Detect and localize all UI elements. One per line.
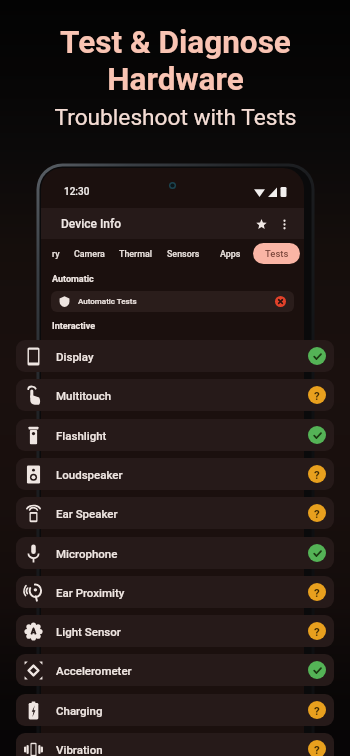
staticText: ?	[314, 507, 320, 520]
button[interactable]: Display	[16, 340, 334, 372]
button[interactable]: More options	[274, 214, 294, 234]
staticText: Ear Proximity	[56, 586, 125, 599]
button[interactable]: Ear Speaker	[16, 497, 334, 529]
staticText: Automatic Tests	[78, 297, 137, 306]
button[interactable]: ry	[45, 243, 67, 264]
staticText: Thermal	[119, 249, 153, 259]
staticText: Automatic	[52, 274, 94, 285]
staticText: ?	[314, 625, 320, 638]
button[interactable]: Ear Proximity	[16, 576, 334, 608]
button[interactable]: Apps	[207, 243, 248, 264]
staticText: Loudspeaker	[56, 468, 123, 481]
staticText: Camera	[74, 249, 105, 259]
staticText: Microphone	[56, 547, 118, 560]
staticText: Apps	[220, 249, 241, 259]
staticText: Multitouch	[56, 389, 112, 402]
button[interactable]: Loudspeaker	[16, 458, 334, 490]
button[interactable]: Accelerometer	[16, 654, 334, 686]
staticText: Light Sensor	[56, 625, 121, 638]
staticText: Sensors	[167, 249, 200, 259]
staticText: ?	[314, 389, 320, 402]
staticText: Hardware	[107, 61, 244, 98]
staticText: Ear Speaker	[56, 507, 118, 520]
staticText: ?	[314, 704, 320, 717]
staticText: ry	[52, 249, 60, 259]
staticText: ?	[314, 743, 320, 756]
button[interactable]: Flashlight	[16, 419, 334, 451]
staticText: Vibration	[56, 743, 103, 756]
button[interactable]: Charging	[16, 694, 334, 726]
button[interactable]: Vibration	[16, 733, 334, 756]
button[interactable]: Tests	[253, 243, 300, 264]
staticText: Device Info	[61, 217, 122, 231]
staticText: Accelerometer	[56, 664, 132, 677]
staticText: Charging	[56, 704, 103, 717]
staticText: Troubleshoot with Tests	[54, 104, 297, 131]
staticText: ?	[314, 468, 320, 481]
button[interactable]: Camera	[67, 243, 112, 264]
staticText: 12:30	[64, 186, 90, 198]
button[interactable]: Light Sensor	[16, 615, 334, 647]
button[interactable]: Favorite	[251, 214, 271, 234]
button[interactable]: Automatic Tests	[51, 291, 294, 312]
staticText: Interactive	[52, 321, 96, 332]
staticText: ?	[314, 586, 320, 599]
button[interactable]: Microphone	[16, 537, 334, 569]
button[interactable]: Sensors	[160, 243, 207, 264]
button[interactable]: Multitouch	[16, 379, 334, 411]
button[interactable]: Thermal	[112, 243, 160, 264]
staticText: Tests	[265, 248, 289, 259]
staticText: Display	[56, 350, 94, 363]
staticText: Test & Diagnose	[60, 24, 291, 61]
staticText: Flashlight	[56, 429, 107, 442]
